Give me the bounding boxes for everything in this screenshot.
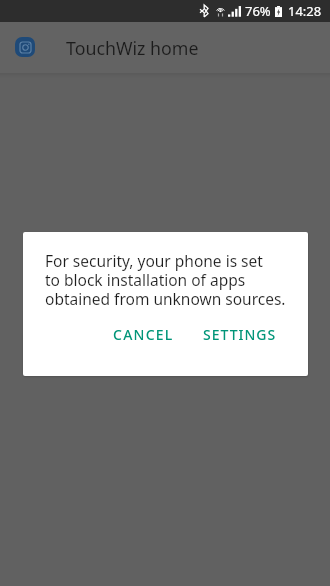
staticText: TouchWiz home [66,36,199,60]
button[interactable]: CANCEL [105,316,182,352]
button[interactable]: TouchWiz home app icon [15,37,35,57]
staticText: 14:28 [288,2,322,20]
staticText: CANCEL [113,325,174,344]
staticText: For security, your phone is set to block… [45,250,286,310]
staticText: SETTINGS [203,325,277,344]
button[interactable]: SETTINGS [195,316,285,352]
staticText: 76% [245,2,271,20]
